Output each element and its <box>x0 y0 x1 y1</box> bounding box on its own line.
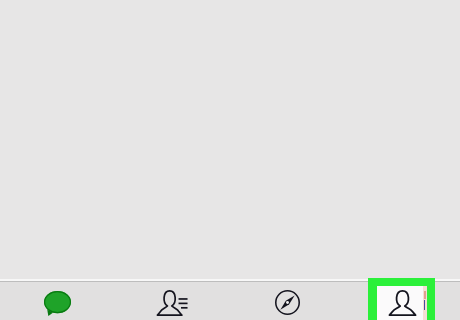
button[interactable]: Contacts <box>115 279 230 320</box>
button[interactable]: Me <box>345 279 460 320</box>
button[interactable]: Me tab highlighted <box>368 278 435 320</box>
button[interactable]: Chats <box>0 279 115 320</box>
button[interactable]: Discover <box>230 279 345 320</box>
